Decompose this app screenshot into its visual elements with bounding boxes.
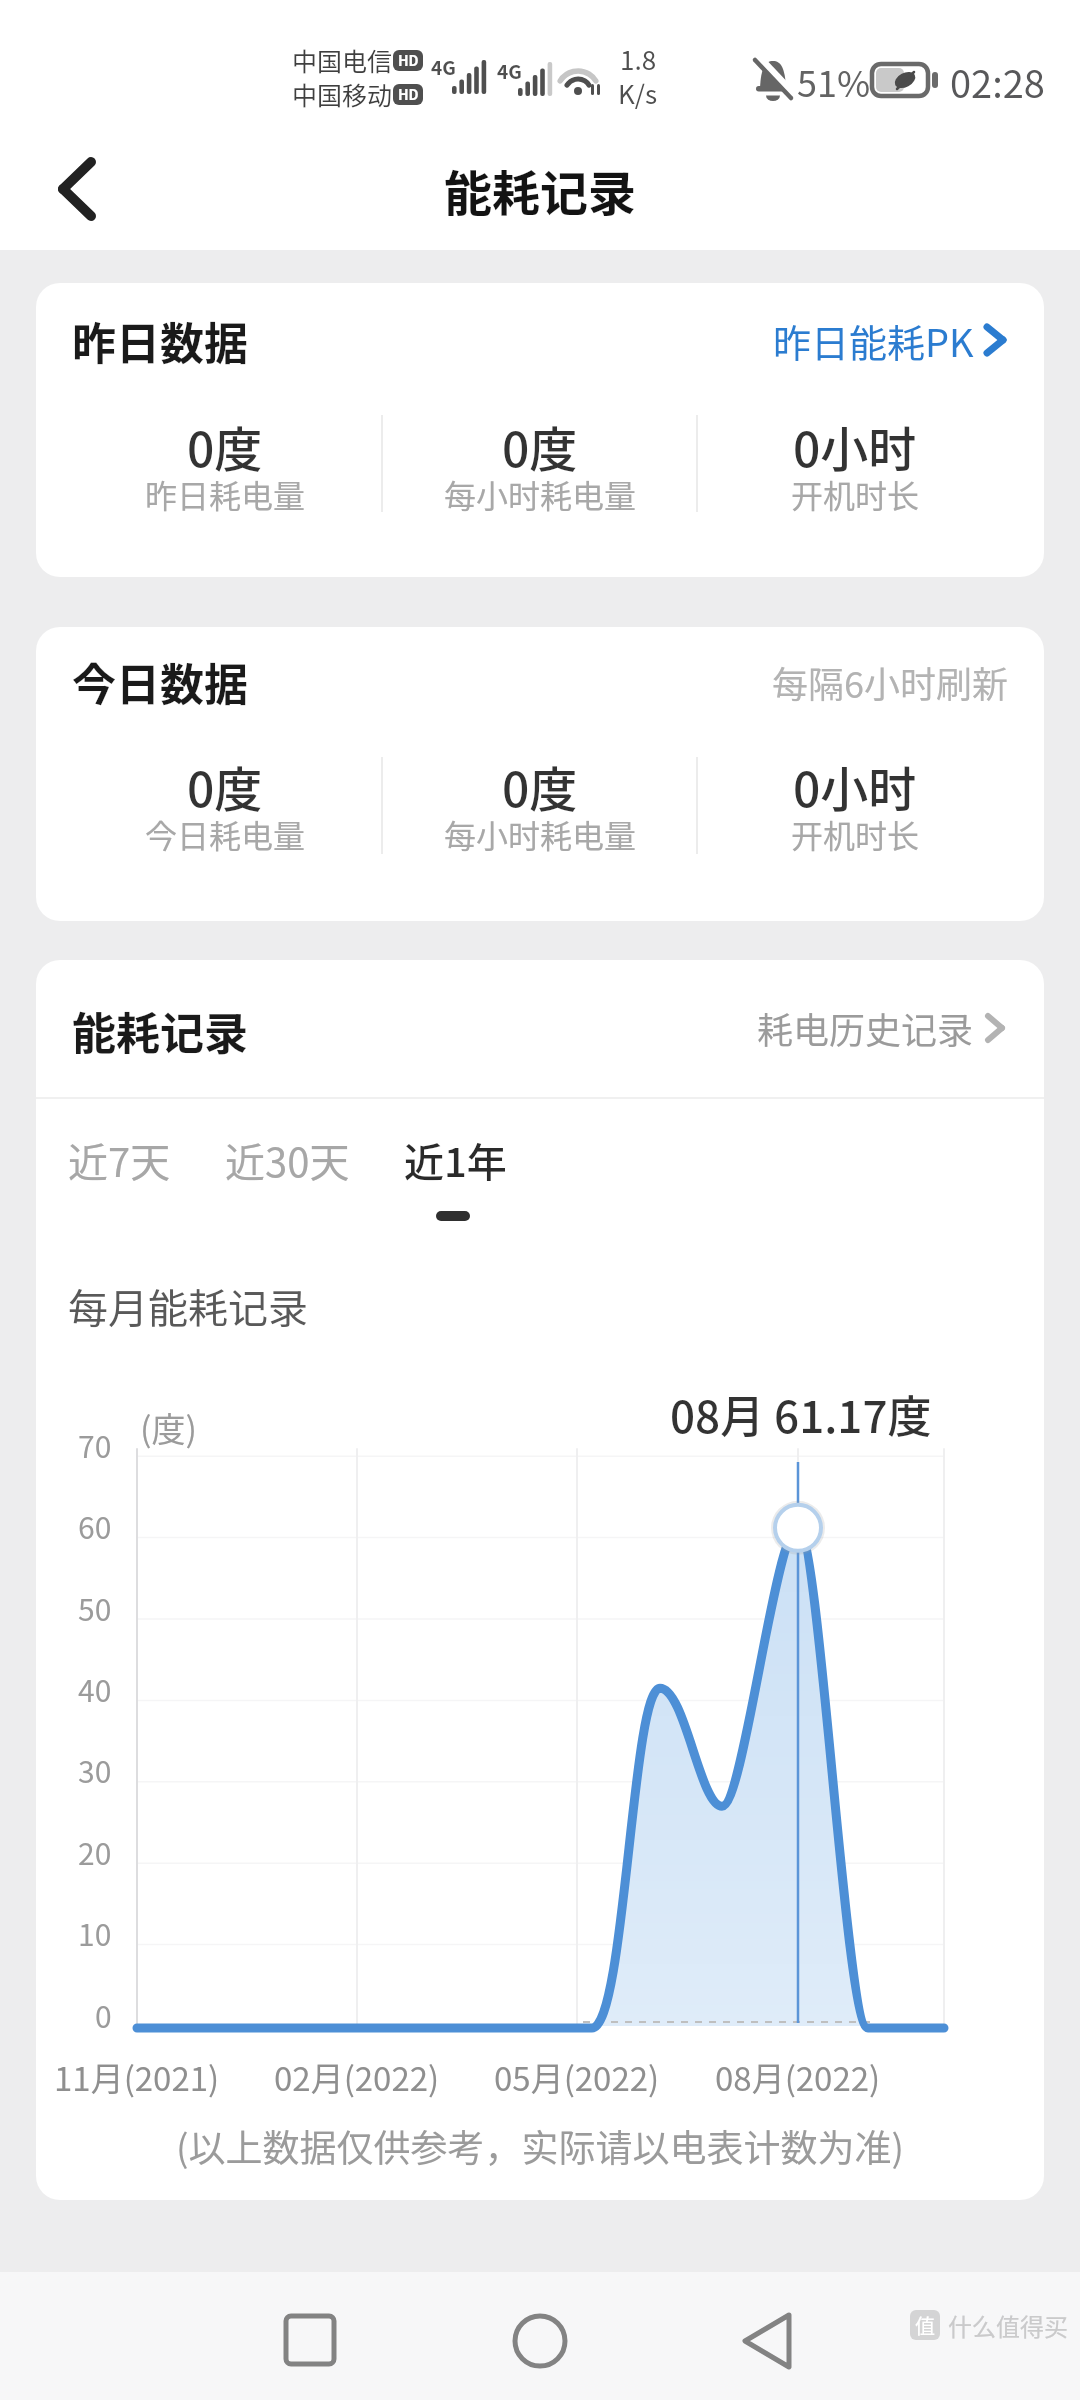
staticText: 每月能耗记录	[68, 1277, 308, 1335]
staticText: HD	[398, 50, 419, 70]
staticText: (以上数据仅供参考，实际请以电表计数为准)	[176, 2119, 905, 2173]
staticText: 60	[78, 1504, 112, 1547]
staticText: 20	[78, 1830, 112, 1873]
staticText: 近1年	[404, 1131, 507, 1189]
staticText: 每隔6小时刷新	[772, 656, 1008, 708]
staticText: 能耗记录	[444, 155, 637, 225]
staticText: 每小时耗电量	[444, 811, 637, 857]
staticText: 什么值得买	[948, 2308, 1068, 2343]
staticText: 51%	[797, 55, 871, 107]
staticText: 0度	[502, 751, 578, 821]
staticText: 能耗记录	[72, 999, 248, 1063]
staticText: 近7天	[68, 1131, 171, 1189]
staticText: 开机时长	[791, 811, 920, 857]
staticText: 0度	[502, 411, 578, 481]
staticText: 昨日能耗PK	[773, 313, 974, 368]
staticText: 0小时	[793, 411, 917, 481]
staticText: (度)	[140, 1403, 197, 1452]
staticText: 05月(2022)	[494, 2053, 660, 2101]
staticText: HD	[398, 84, 419, 104]
staticText: 70	[78, 1423, 112, 1466]
staticText: 0度	[187, 411, 263, 481]
staticText: 0	[95, 1993, 112, 2036]
staticText: 4G	[431, 53, 456, 81]
staticText: 0度	[187, 751, 263, 821]
staticText: 开机时长	[791, 471, 920, 517]
staticText: 02月(2022)	[274, 2053, 440, 2101]
staticText: 08月(2022)	[715, 2053, 881, 2101]
staticText: 耗电历史记录	[757, 1002, 974, 1054]
staticText: K/s	[618, 74, 658, 112]
staticText: 值	[915, 2311, 935, 2340]
staticText: 今日数据	[72, 650, 248, 714]
staticText: 今日耗电量	[145, 811, 306, 857]
staticText: 每小时耗电量	[444, 471, 637, 517]
staticText: 0小时	[793, 751, 917, 821]
staticText: 中国移动	[292, 76, 393, 112]
staticText: 40	[78, 1667, 112, 1710]
staticText: 近30天	[225, 1131, 350, 1189]
staticText: 08月 61.17度	[670, 1382, 932, 1446]
staticText: 中国电信	[292, 42, 393, 78]
staticText: 昨日耗电量	[145, 471, 306, 517]
staticText: 4G	[497, 57, 522, 85]
staticText: 02:28	[950, 54, 1045, 109]
staticText: 30	[78, 1748, 112, 1791]
staticText: 11月(2021)	[54, 2053, 220, 2101]
staticText: 10	[78, 1911, 112, 1954]
staticText: 1.8	[620, 40, 657, 78]
staticText: 50	[78, 1586, 112, 1629]
staticText: 昨日数据	[72, 309, 248, 373]
